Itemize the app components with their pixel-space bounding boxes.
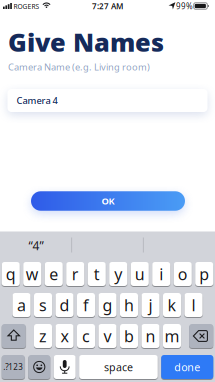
button[interactable]: e (45, 262, 63, 286)
button[interactable]: b (120, 324, 138, 348)
button[interactable]: t (88, 262, 106, 286)
staticText: q (6, 263, 16, 285)
staticText: i (159, 263, 163, 285)
button[interactable]: x (55, 324, 74, 348)
staticText: t (94, 263, 100, 285)
button[interactable]: p (195, 262, 213, 286)
staticText: g (102, 294, 112, 316)
staticText: 99% (176, 1, 193, 11)
staticText: Camera Name (e.g. Living room) (8, 61, 150, 73)
button[interactable]: m (163, 324, 181, 348)
staticText: y (114, 263, 122, 285)
button[interactable]: k (163, 293, 181, 317)
button[interactable]: v (98, 324, 117, 348)
staticText: l (191, 294, 195, 316)
staticText: m (164, 325, 179, 347)
staticText: c (82, 325, 90, 347)
button[interactable]: a (12, 293, 30, 317)
staticText: Give Names (8, 25, 164, 59)
button[interactable]: Camera 4 (7, 89, 207, 112)
staticText: b (124, 325, 134, 347)
staticText: v (103, 325, 111, 347)
staticText: space (104, 360, 133, 374)
button[interactable]: z (34, 324, 52, 348)
button[interactable]: h (120, 293, 138, 317)
staticText: j (148, 294, 152, 316)
button[interactable]: Dictation (54, 355, 76, 379)
button[interactable]: space (79, 355, 158, 379)
staticText: x (60, 325, 68, 347)
button[interactable]: r (66, 262, 84, 286)
button[interactable]: .?123 (2, 355, 25, 379)
button[interactable]: l (184, 293, 202, 317)
button[interactable]: done (161, 355, 213, 379)
button[interactable]: u (131, 262, 149, 286)
staticText: p (199, 263, 209, 285)
button[interactable]: q (2, 262, 20, 286)
staticText: a (17, 294, 26, 316)
button[interactable]: w (23, 262, 41, 286)
button[interactable]: s (34, 293, 52, 317)
staticText: o (178, 263, 188, 285)
staticText: r (72, 263, 79, 285)
button[interactable]: Emoji (28, 355, 50, 379)
staticText: w (26, 263, 39, 285)
button[interactable]: f (77, 293, 95, 317)
button[interactable]: d (55, 293, 74, 317)
staticText: done (174, 360, 200, 374)
staticText: u (135, 263, 145, 285)
staticText: d (59, 294, 69, 316)
staticText: e (49, 263, 58, 285)
staticText: 7:27 AM (92, 1, 123, 11)
button[interactable]: o (174, 262, 192, 286)
staticText: k (167, 294, 176, 316)
staticText: Camera 4 (16, 94, 57, 107)
button[interactable]: “4” (0, 232, 71, 258)
button[interactable]: n (141, 324, 159, 348)
button[interactable]: g (98, 293, 117, 317)
button[interactable]: i (152, 262, 170, 286)
button[interactable]: j (141, 293, 159, 317)
staticText: z (39, 325, 47, 347)
button[interactable]: y (109, 262, 127, 286)
staticText: OK (101, 195, 114, 207)
staticText: ROGERS (13, 2, 39, 11)
button[interactable]: Delete (189, 324, 213, 348)
staticText: f (83, 294, 89, 316)
button[interactable]: Shift (2, 324, 26, 348)
staticText: h (124, 294, 134, 316)
staticText: “4” (28, 237, 43, 253)
staticText: .?123 (3, 362, 23, 372)
staticText: n (145, 325, 155, 347)
button[interactable]: c (77, 324, 95, 348)
staticText: s (39, 294, 47, 316)
button[interactable]: OK (31, 191, 185, 211)
